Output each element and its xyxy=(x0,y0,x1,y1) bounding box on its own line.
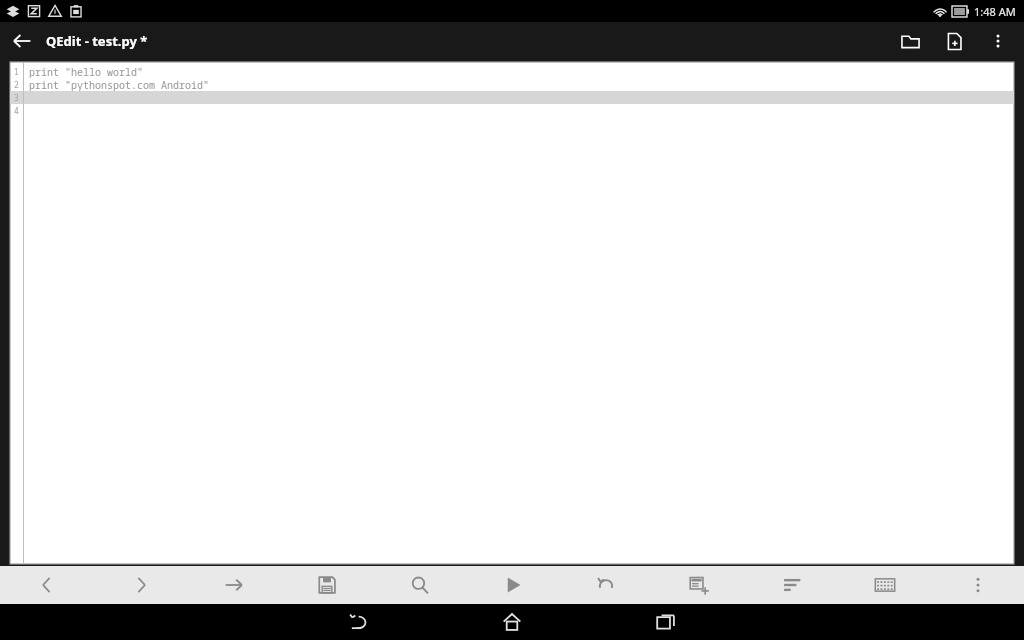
staticText: print "hello world" xyxy=(29,65,143,78)
button[interactable]: Open folder xyxy=(888,22,932,60)
button[interactable]: Back xyxy=(0,22,44,60)
staticText: QEdit - test.py * xyxy=(46,32,148,50)
button[interactable]: Undo xyxy=(559,566,652,604)
button[interactable]: Next xyxy=(94,566,187,604)
staticText: print "pythonspot.com Android" xyxy=(29,78,209,91)
button[interactable]: More xyxy=(931,566,1024,604)
button[interactable]: Previous xyxy=(0,566,94,604)
staticText: 2 xyxy=(14,79,19,90)
staticText: 4 xyxy=(14,105,19,116)
staticText: 1 xyxy=(14,66,19,77)
button[interactable]: Run xyxy=(466,566,559,604)
button[interactable]: Insert xyxy=(652,566,745,604)
staticText: 3 xyxy=(14,92,19,103)
button[interactable]: Search xyxy=(373,566,466,604)
button[interactable]: Save xyxy=(280,566,373,604)
button[interactable]: Go to xyxy=(187,566,280,604)
button[interactable]: Back xyxy=(331,604,385,640)
button[interactable]: Home xyxy=(485,604,539,640)
button[interactable]: New file xyxy=(932,22,976,60)
button[interactable]: More options xyxy=(976,22,1020,60)
button[interactable]: Format xyxy=(745,566,838,604)
button[interactable]: Keyboard xyxy=(838,566,931,604)
staticText: 1:48 AM xyxy=(974,4,1016,19)
button[interactable]: Recent apps xyxy=(639,604,693,640)
